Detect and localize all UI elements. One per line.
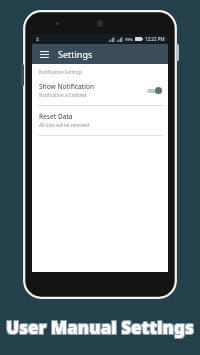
staticText: Notification is Enabled [39, 92, 87, 98]
button[interactable]: Reset Data [32, 111, 168, 131]
staticText: 12:22 PM [145, 36, 165, 42]
staticText: Show Notification [39, 82, 94, 91]
staticText: User Manual Settings [5, 316, 193, 339]
staticText: User Manual Settings [7, 315, 195, 338]
button[interactable]: Toggle show notification [146, 86, 162, 95]
staticText: User Manual Settings [5, 315, 193, 338]
staticText: All data will be removed [39, 122, 90, 128]
staticText: User Manual Settings [5, 317, 193, 340]
staticText: User Manual Settings [7, 316, 195, 339]
staticText: Settings [58, 48, 93, 60]
staticText: Notification Settings [39, 69, 82, 75]
staticText: Reset Data [39, 112, 73, 121]
staticText: User Manual Settings [6, 315, 194, 338]
staticText: User Manual Settings [7, 317, 195, 340]
staticText: User Manual Settings [6, 317, 194, 340]
button[interactable]: Show Notification [32, 80, 168, 101]
staticText: User Manual Settings [6, 316, 194, 339]
button[interactable]: Open navigation menu [38, 48, 50, 60]
staticText: 99% [125, 37, 133, 42]
